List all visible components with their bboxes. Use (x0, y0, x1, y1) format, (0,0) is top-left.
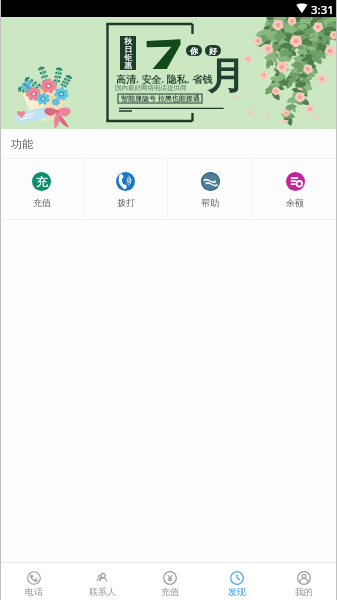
staticText: 你 (190, 46, 198, 56)
staticText: 高清. 安全. 隐私. 省钱 (116, 72, 213, 86)
button[interactable]: 余额 (253, 159, 337, 220)
staticText: 秋日钜惠 (124, 36, 133, 70)
staticText: 充值 (161, 586, 179, 597)
staticText: 余额 (286, 197, 304, 208)
button[interactable]: 充 (0, 159, 83, 220)
staticText: 发现 (228, 586, 246, 597)
staticText: 好 (209, 46, 217, 56)
button[interactable]: 拨打 (84, 159, 167, 220)
button[interactable]: 我的 (270, 563, 337, 600)
staticText: 电话 (25, 586, 43, 597)
staticText: 拨打 (117, 197, 135, 208)
staticText: 3:31 (311, 2, 334, 18)
staticText: 月 (207, 52, 245, 100)
staticText: 我的 (295, 586, 313, 597)
staticText: 联系人 (89, 586, 116, 597)
button[interactable]: 联系人 (68, 563, 136, 600)
staticText: 智能显隐号 拉黑也能接通 (121, 94, 200, 103)
staticText: 国内最好网络电话提供商 (115, 84, 187, 92)
staticText: 充 (36, 174, 48, 189)
staticText: 充值 (33, 197, 51, 208)
staticText: 功能 (11, 137, 33, 151)
button[interactable]: 帮助 (168, 159, 252, 220)
staticText: 帮助 (201, 197, 219, 208)
button[interactable]: 发现 (203, 563, 270, 600)
button[interactable]: 充值 (136, 563, 203, 600)
button[interactable]: 电话 (0, 563, 68, 600)
